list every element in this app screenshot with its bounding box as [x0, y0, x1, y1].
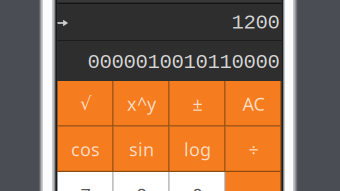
button[interactable]: AC [225, 81, 281, 126]
button[interactable]: log [169, 126, 225, 172]
button[interactable]: √ [57, 81, 113, 126]
staticText: ÷ [248, 137, 258, 161]
button[interactable]: cos [57, 126, 113, 172]
button[interactable]: 8 [113, 172, 169, 191]
button[interactable]: ÷ [225, 126, 281, 172]
staticText: 8 [136, 182, 146, 191]
staticText: 0000010010110000 [87, 51, 279, 74]
staticText: cos [71, 137, 100, 161]
button[interactable]: 9 [169, 172, 225, 191]
staticText: √ [80, 93, 91, 114]
button[interactable]: x^y [113, 81, 169, 126]
staticText: 1200 [231, 11, 279, 35]
staticText: 7 [80, 182, 90, 191]
staticText: 9 [192, 182, 202, 191]
button[interactable]: sin [113, 126, 169, 172]
staticText: ± [192, 91, 202, 116]
button[interactable]: × [225, 172, 281, 191]
staticText: x^y [127, 91, 156, 116]
staticText: log [184, 137, 211, 161]
button[interactable]: ± [169, 81, 225, 126]
button[interactable]: 7 [57, 172, 113, 191]
staticText: AC [242, 91, 264, 116]
staticText: sin [129, 137, 154, 161]
